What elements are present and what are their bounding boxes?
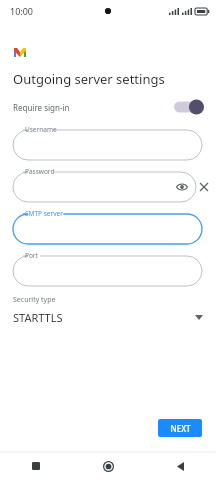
button[interactable]: NEXT bbox=[158, 419, 202, 437]
button[interactable]: Username bbox=[13, 124, 202, 160]
staticText: Port bbox=[25, 251, 38, 260]
staticText: Username bbox=[25, 125, 57, 134]
staticText: 10:00 bbox=[10, 5, 34, 17]
button[interactable]: Password bbox=[13, 166, 196, 202]
button[interactable]: Security type bbox=[0, 295, 216, 325]
button[interactable]: Clear password bbox=[197, 180, 211, 194]
staticText: Require sign-in bbox=[13, 102, 70, 113]
staticText: STARTTLS bbox=[13, 310, 63, 325]
button[interactable]: Require sign-in bbox=[174, 98, 204, 116]
staticText: NEXT bbox=[170, 423, 191, 434]
button[interactable]: SMTP server bbox=[13, 208, 202, 244]
staticText: SMTP server bbox=[25, 209, 63, 218]
staticText: Password bbox=[25, 167, 55, 176]
button[interactable]: Port bbox=[13, 250, 202, 286]
button[interactable]: Recent apps bbox=[0, 452, 72, 480]
button[interactable]: Require sign-in bbox=[0, 97, 216, 117]
staticText: Outgoing server settings bbox=[13, 70, 165, 88]
staticText: Security type bbox=[13, 295, 56, 305]
button[interactable]: Show password bbox=[175, 180, 189, 194]
button[interactable]: Home bbox=[72, 452, 144, 480]
button[interactable]: Back bbox=[144, 452, 216, 480]
